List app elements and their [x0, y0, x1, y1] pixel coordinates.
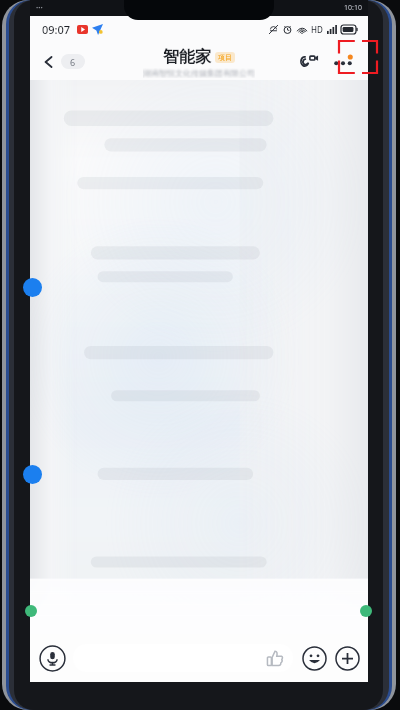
staticText: 6: [70, 56, 76, 68]
button[interactable]: Emoji: [300, 644, 328, 672]
button[interactable]: Back: [36, 50, 91, 73]
staticText: 智能家: [163, 47, 211, 67]
button[interactable]: Video call: [294, 46, 324, 76]
staticText: 09:07: [42, 22, 71, 37]
staticText: 湖南智恒文化传媒集团有限公司: [143, 68, 255, 78]
staticText: HD: [311, 24, 323, 35]
button[interactable]: Add attachment: [333, 644, 361, 672]
button[interactable]: More options: [326, 47, 360, 75]
staticText: •••: [36, 4, 43, 12]
staticText: 10:10: [344, 3, 362, 13]
staticText: 项目: [218, 53, 232, 62]
button[interactable]: Thumbs up: [266, 649, 284, 667]
button[interactable]: Voice message: [37, 643, 67, 673]
button[interactable]: Thumbs up: [73, 644, 293, 672]
